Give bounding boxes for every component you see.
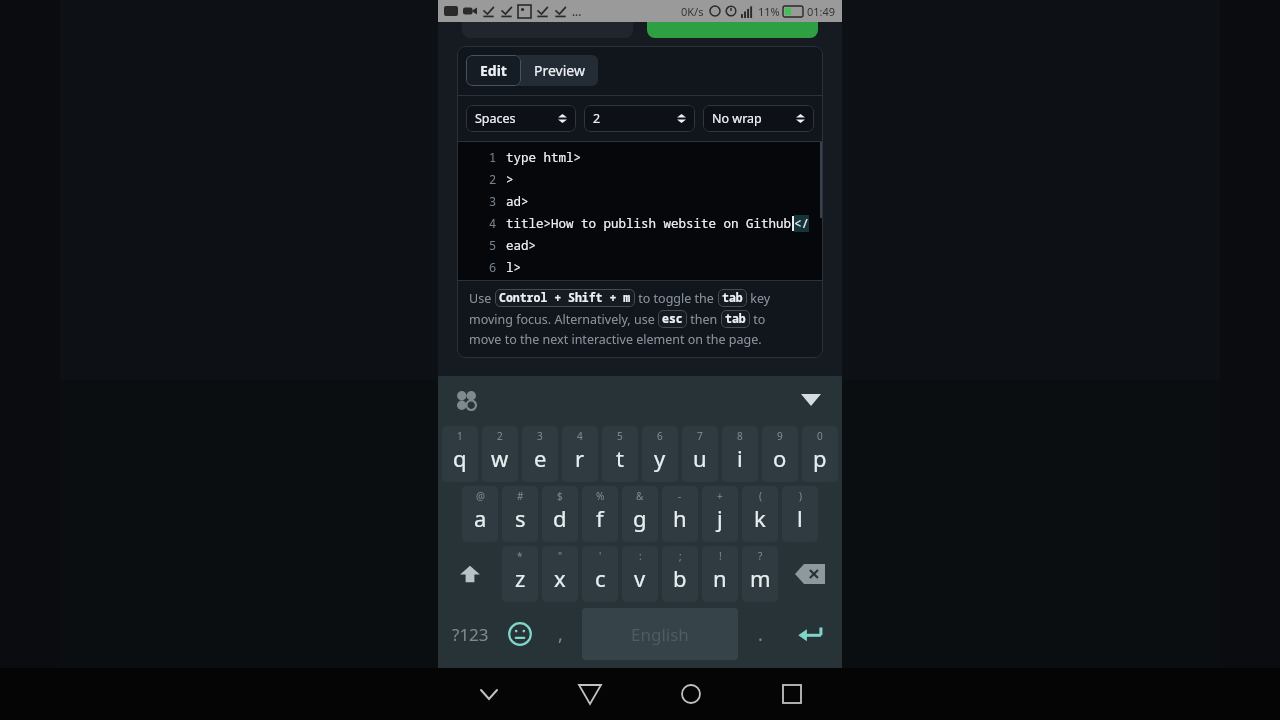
staticText: ) <box>799 489 802 503</box>
staticText: , <box>558 622 563 647</box>
staticText: o <box>773 443 787 473</box>
staticText: s <box>515 503 526 533</box>
button[interactable]: 1 <box>442 426 478 482</box>
button[interactable]: Back <box>539 668 640 720</box>
button[interactable]: Hide keyboard <box>438 668 539 720</box>
button[interactable]: Recents <box>741 668 842 720</box>
button[interactable]: @ <box>462 486 498 542</box>
staticText: 1 <box>489 149 497 165</box>
button[interactable]: : <box>622 546 658 602</box>
staticText: ... <box>572 4 582 19</box>
staticText: q <box>453 443 467 473</box>
button[interactable]: # <box>502 486 538 542</box>
staticText: 5 <box>617 429 623 443</box>
button[interactable]: ! <box>702 546 738 602</box>
button[interactable]: Collapse keyboard <box>796 385 826 415</box>
staticText: ' <box>599 549 602 563</box>
staticText: + <box>717 489 723 503</box>
staticText: j <box>717 503 723 533</box>
staticText: p <box>813 443 827 473</box>
staticText: 7 <box>697 429 703 443</box>
staticText: u <box>693 443 707 473</box>
button[interactable]: Clipboard <box>451 385 481 415</box>
staticText: z <box>515 563 526 593</box>
staticText: key <box>747 290 771 307</box>
staticText: 2 <box>489 171 497 187</box>
staticText: ead> <box>506 237 537 254</box>
staticText: English <box>631 623 689 646</box>
button[interactable]: + <box>702 486 738 542</box>
button[interactable]: Spaces <box>466 105 576 132</box>
staticText: ?123 <box>452 623 489 646</box>
button[interactable]: ( <box>742 486 778 542</box>
staticText: . <box>758 622 763 647</box>
button[interactable]: Enter <box>782 606 838 662</box>
staticText: " <box>558 549 563 563</box>
button[interactable]: Preview <box>521 55 598 86</box>
staticText: 2 <box>497 429 503 443</box>
staticText: 3 <box>537 429 543 443</box>
staticText: l <box>797 503 803 533</box>
button[interactable]: Emoji <box>502 606 538 662</box>
button[interactable]: ) <box>782 486 818 542</box>
button[interactable]: 2 <box>584 105 695 132</box>
button[interactable]: & <box>622 486 658 542</box>
staticText: 1 <box>457 429 463 443</box>
staticText: type html> <box>506 149 582 166</box>
staticText: y <box>654 443 666 473</box>
staticText: c <box>595 563 606 593</box>
button[interactable]: ?123 <box>442 606 498 662</box>
staticText: - <box>678 489 682 503</box>
staticText: b <box>673 563 687 593</box>
button[interactable]: , <box>542 606 578 662</box>
staticText: m <box>750 563 771 593</box>
button[interactable]: " <box>542 546 578 602</box>
staticText: to <box>750 311 766 328</box>
button[interactable]: No wrap <box>703 105 814 132</box>
button[interactable]: 5 <box>602 426 638 482</box>
button[interactable]: $ <box>542 486 578 542</box>
staticText: ad> <box>506 193 529 210</box>
staticText: to toggle the <box>635 290 718 307</box>
staticText: then <box>687 311 721 328</box>
staticText: ! <box>719 549 722 563</box>
button[interactable]: 9 <box>762 426 798 482</box>
staticText: 5 <box>489 237 497 253</box>
button[interactable]: 2 <box>482 426 518 482</box>
button[interactable]: 4 <box>562 426 598 482</box>
staticText: tab <box>725 311 746 327</box>
staticText: i <box>737 443 743 473</box>
button[interactable]: ; <box>662 546 698 602</box>
staticText: * <box>517 549 523 563</box>
button[interactable]: * <box>502 546 538 602</box>
staticText: a <box>474 503 487 533</box>
staticText: # <box>517 489 524 503</box>
button[interactable] <box>647 22 818 38</box>
staticText: moving focus. Alternatively, use <box>469 311 658 328</box>
staticText: k <box>754 503 766 533</box>
button[interactable]: Edit <box>466 55 521 86</box>
button[interactable]: 3 <box>522 426 558 482</box>
button[interactable]: 0 <box>802 426 838 482</box>
button[interactable]: % <box>582 486 618 542</box>
staticText: 11% <box>758 4 780 19</box>
staticText: @ <box>476 489 485 503</box>
button[interactable]: English <box>582 608 738 660</box>
button[interactable]: Shift <box>442 546 498 602</box>
button[interactable]: 6 <box>642 426 678 482</box>
staticText: 8 <box>737 429 743 443</box>
button[interactable]: 8 <box>722 426 758 482</box>
staticText: ? <box>758 549 763 563</box>
button[interactable]: Home <box>640 668 741 720</box>
staticText: 3 <box>489 193 497 209</box>
staticText: 4 <box>577 429 583 443</box>
staticText: ; <box>679 549 682 563</box>
button[interactable]: ' <box>582 546 618 602</box>
button[interactable]: . <box>742 606 778 662</box>
button[interactable]: Backspace <box>782 546 838 602</box>
button[interactable]: 7 <box>682 426 718 482</box>
staticText: w <box>491 443 509 473</box>
button[interactable]: ? <box>742 546 778 602</box>
button[interactable]: - <box>662 486 698 542</box>
